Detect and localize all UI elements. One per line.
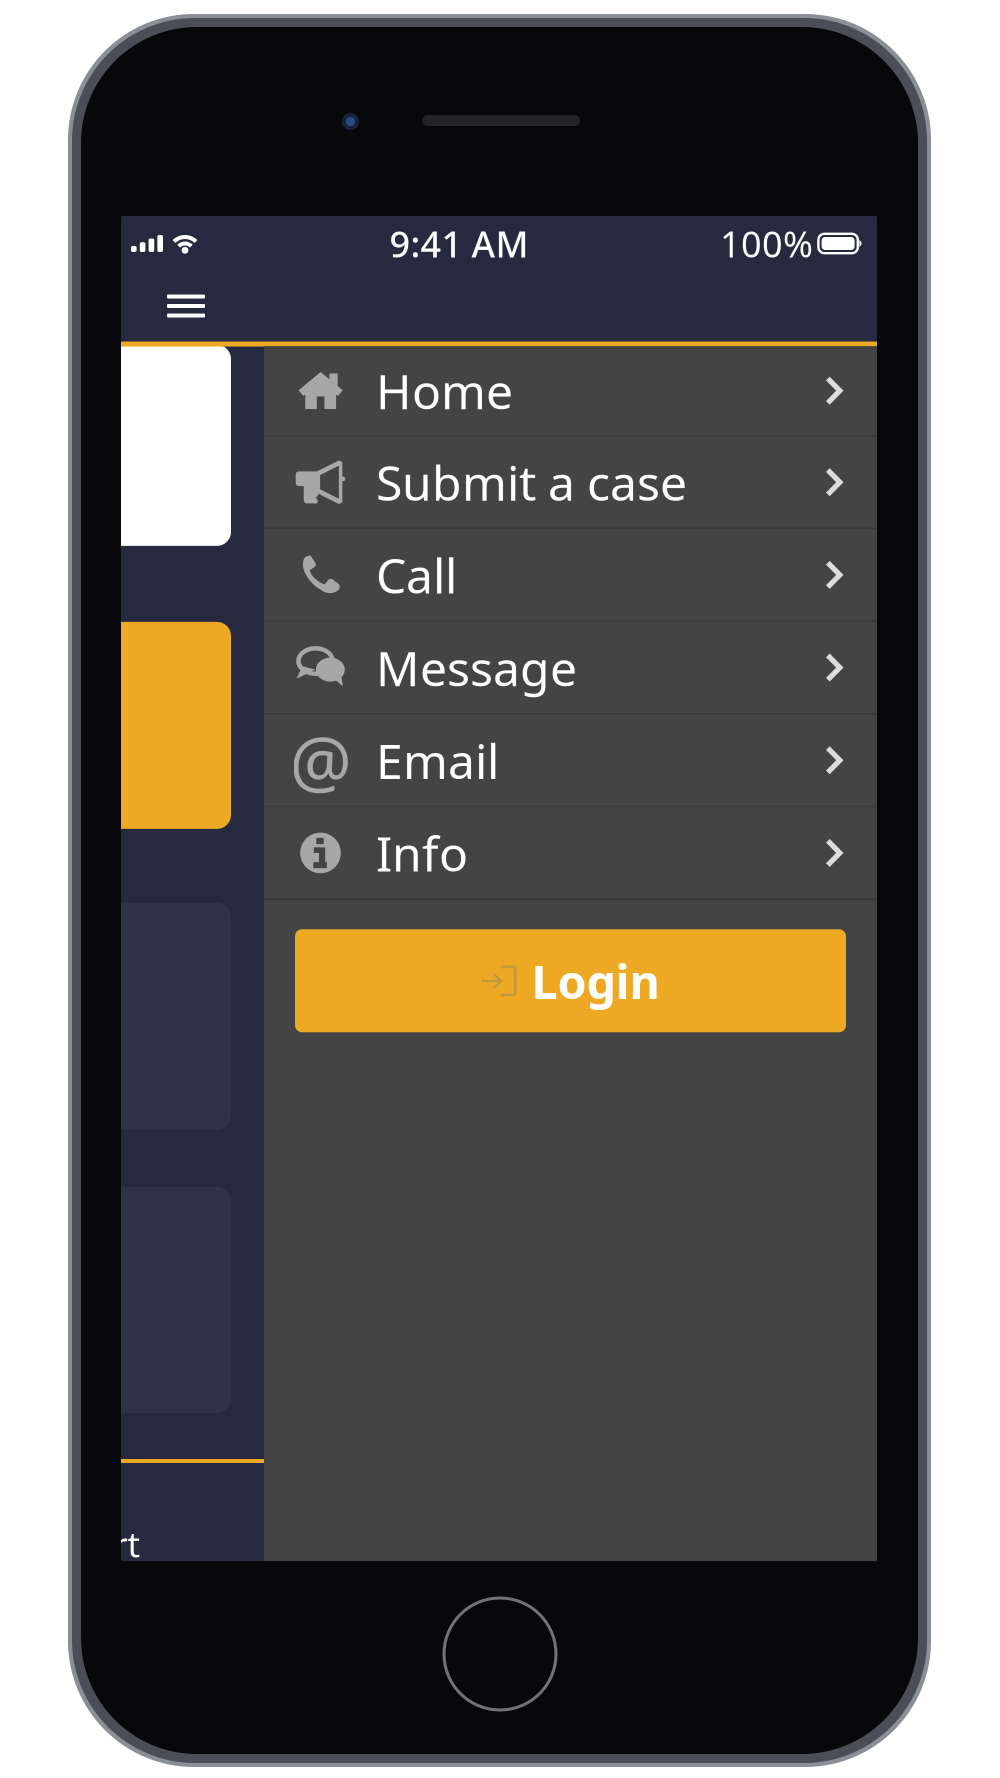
button[interactable]: Call (264, 530, 877, 620)
button[interactable]: @ (264, 715, 877, 806)
button[interactable]: Info (264, 808, 877, 898)
staticText: 9:41 AM (389, 220, 528, 267)
staticText: Email (376, 728, 499, 792)
button[interactable]: Login (295, 929, 846, 1032)
staticText: Login (531, 950, 659, 1012)
staticText: @ (289, 714, 351, 806)
staticText: Home (376, 359, 513, 422)
staticText: Support (10, 1521, 140, 1567)
button[interactable]: Message (264, 622, 877, 713)
button[interactable]: Submit a case (264, 437, 877, 528)
button[interactable]: Support (0, 1489, 170, 1587)
button[interactable]: Home (264, 346, 877, 435)
staticText: Message (376, 636, 577, 699)
button[interactable]: Menu (146, 271, 226, 341)
staticText: Call (376, 543, 457, 607)
staticText: 100% (720, 220, 813, 267)
staticText: Info (376, 821, 468, 885)
staticText: Submit a case (376, 450, 687, 514)
